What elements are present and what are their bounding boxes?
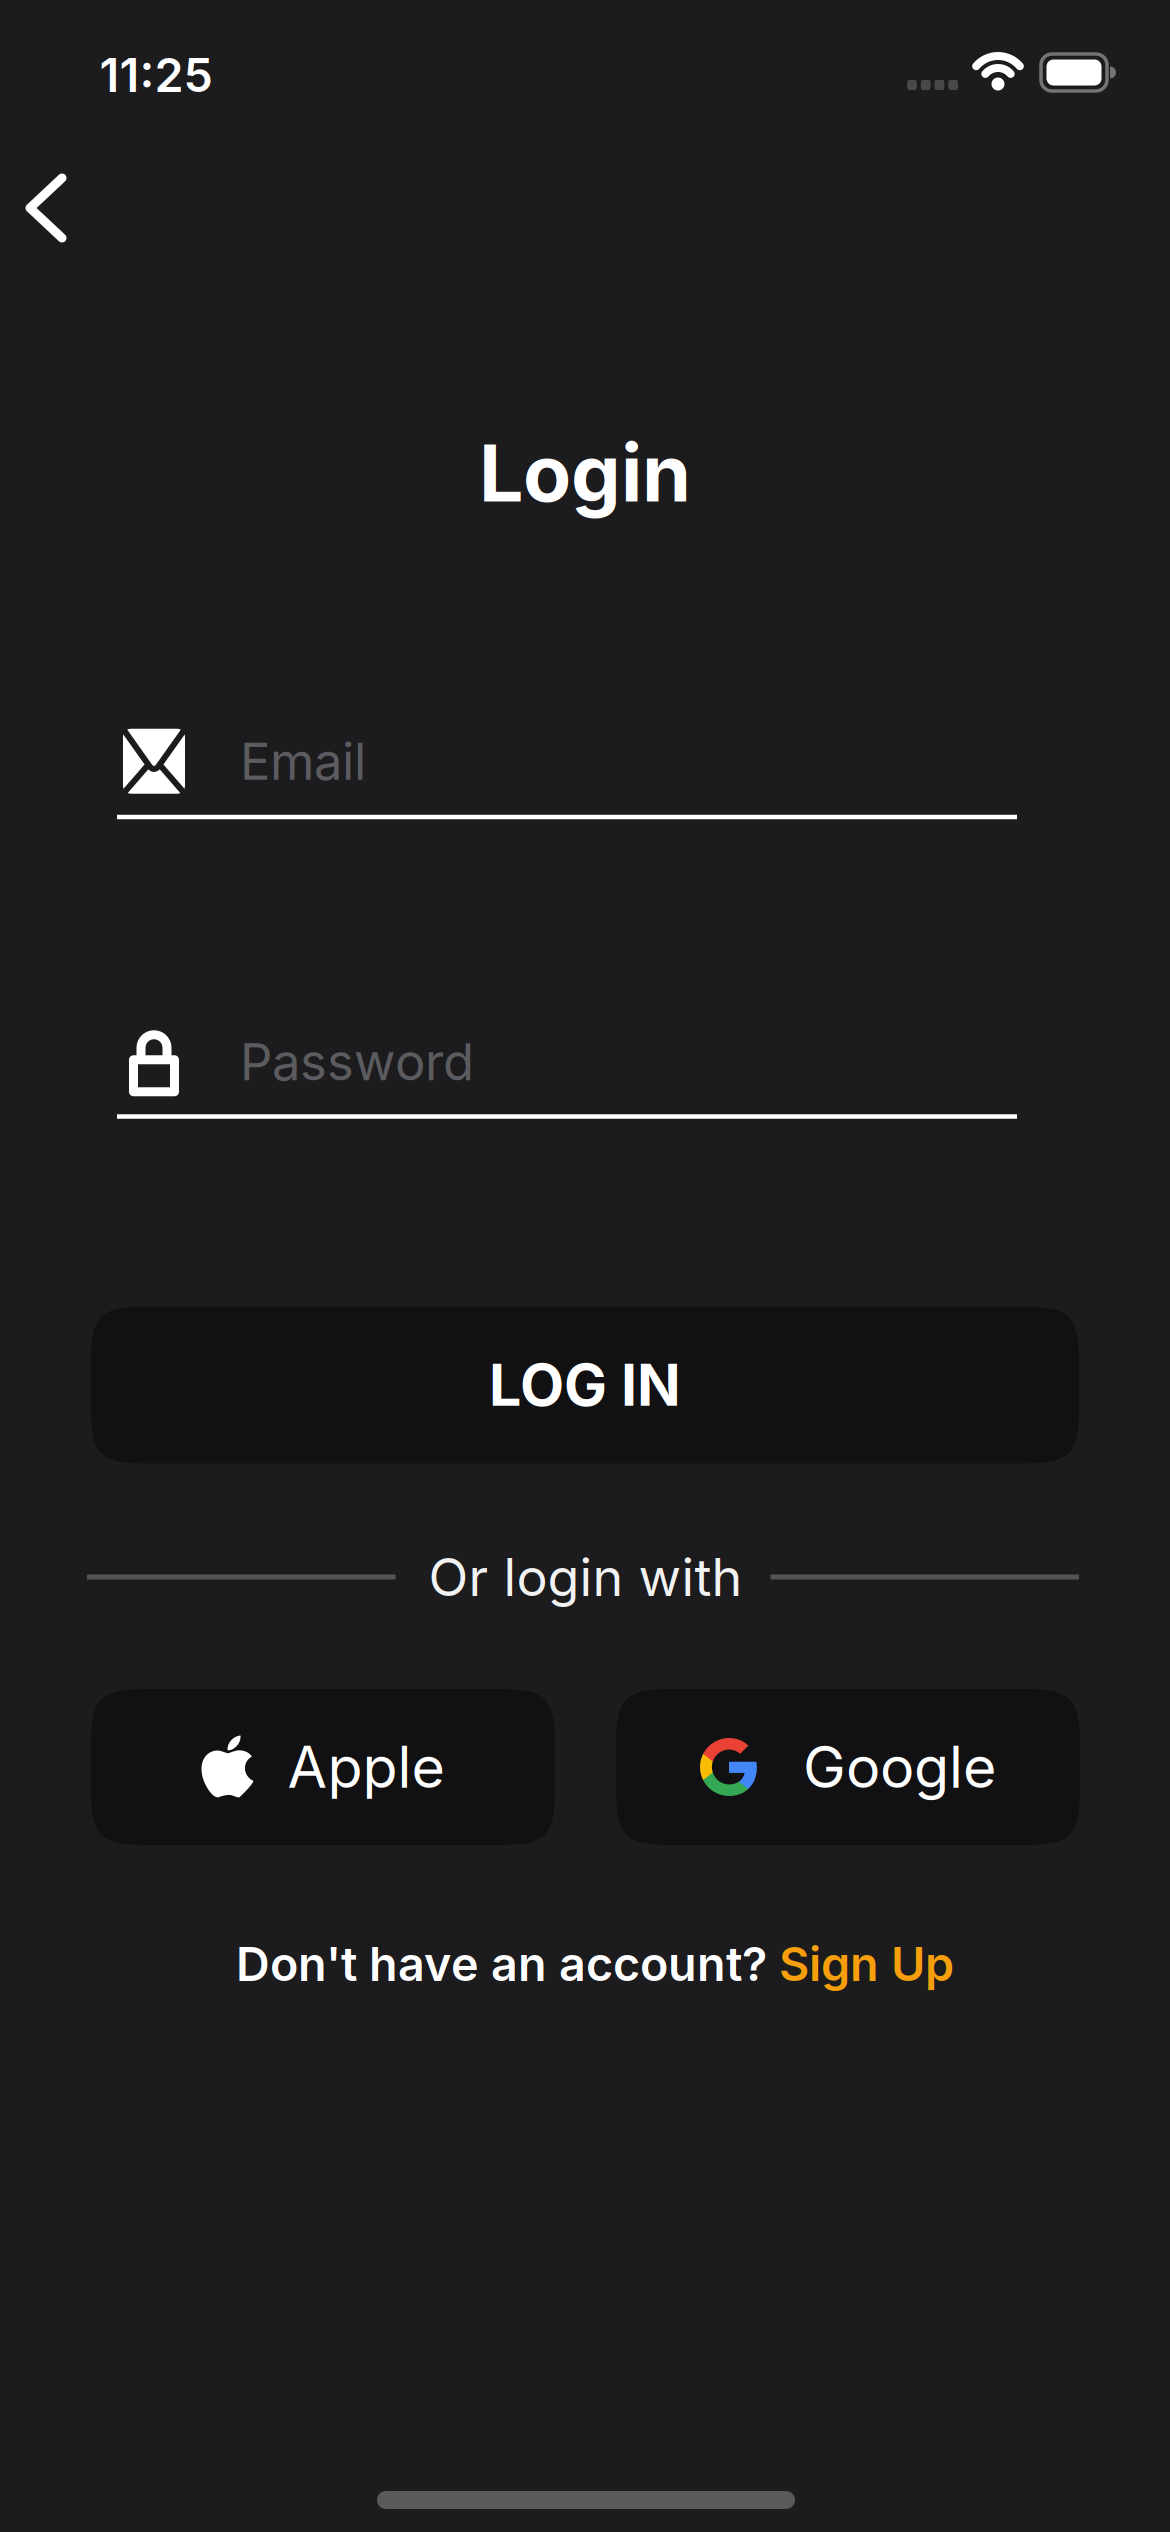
button[interactable]: Google — [616, 1689, 1080, 1845]
button[interactable]: Apple — [91, 1689, 555, 1845]
staticText: Email — [240, 731, 366, 792]
button[interactable]: Password — [117, 1027, 1017, 1119]
staticText: Password — [240, 1031, 474, 1092]
staticText: Or login with — [428, 1545, 742, 1608]
staticText: LOG IN — [489, 1350, 681, 1420]
staticText: Sign Up — [779, 1936, 954, 1992]
button[interactable]: LOG IN — [91, 1306, 1079, 1463]
staticText: Login — [479, 425, 691, 521]
staticText: Google — [803, 1732, 996, 1802]
staticText: Don't have an account? — [236, 1936, 779, 1992]
staticText: 11:25 — [99, 47, 212, 103]
button[interactable]: Back — [2, 164, 90, 252]
staticText: Apple — [287, 1732, 444, 1802]
button[interactable]: Sign Up — [779, 1936, 954, 1992]
button[interactable]: Email — [117, 729, 1017, 819]
